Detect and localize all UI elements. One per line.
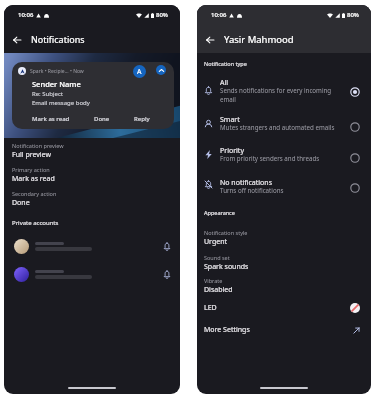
staticText: Private accounts [12, 219, 59, 227]
staticText: Turns off notifications [220, 186, 284, 194]
staticText: Re: Subject [32, 90, 63, 98]
button[interactable]: Notifications [4, 238, 180, 254]
button[interactable]: Collapse [156, 65, 166, 75]
staticText: Full preview [12, 150, 51, 160]
button[interactable]: Notifications [161, 268, 173, 280]
staticText: More Settings [204, 325, 250, 335]
staticText: Email message body [32, 99, 90, 107]
staticText: Priority [220, 146, 244, 156]
staticText: Notification type [204, 60, 247, 67]
staticText: Sender Name [32, 79, 81, 89]
button[interactable]: Priority [197, 146, 371, 164]
staticText: Spark sounds [204, 262, 249, 272]
button[interactable]: Notifications [161, 240, 173, 252]
staticText: LED [204, 303, 217, 313]
button[interactable]: Done [94, 115, 110, 123]
staticText: Notification preview [12, 142, 64, 149]
staticText: Mutes strangers and automated emails [220, 123, 335, 131]
button[interactable]: A [133, 65, 146, 78]
button[interactable]: Notification preview [4, 142, 180, 160]
staticText: Spark • Recipie... • Now [30, 68, 84, 75]
staticText: Urgent [204, 237, 228, 247]
staticText: Primary action [12, 166, 50, 173]
staticText: 80% [156, 11, 168, 19]
button[interactable]: All [197, 78, 371, 106]
staticText: 10:06 [18, 11, 34, 19]
staticText: Appearance [204, 209, 235, 216]
staticText: Mark as read [12, 174, 55, 184]
button[interactable]: Notification style [197, 229, 371, 247]
button[interactable]: No notifications [197, 178, 371, 196]
button[interactable]: Primary action [4, 166, 180, 184]
staticText: Done [12, 198, 30, 208]
staticText: 80% [347, 11, 359, 19]
staticText: 10:06 [211, 11, 227, 19]
staticText: Sound set [204, 254, 230, 261]
button[interactable]: More Settings [197, 321, 371, 339]
button[interactable]: Mark as read [32, 115, 70, 123]
button[interactable]: Back [203, 33, 217, 47]
button[interactable]: Sound set [197, 254, 371, 272]
button[interactable]: Reply [134, 115, 150, 123]
staticText: Disabled [204, 285, 233, 295]
staticText: Vibrate [204, 277, 223, 284]
button[interactable]: Notifications [4, 266, 180, 282]
staticText: A [137, 67, 142, 77]
staticText: All [220, 78, 229, 88]
button[interactable]: LED [197, 299, 371, 317]
staticText: Secondary action [12, 190, 57, 197]
staticText: Notifications [31, 33, 85, 45]
button[interactable]: Smart [197, 115, 371, 133]
staticText: No notifications [220, 178, 273, 188]
button[interactable]: Vibrate [197, 277, 371, 295]
staticText: Yasir Mahmood [224, 33, 294, 46]
staticText: From priority senders and threads [220, 154, 320, 162]
button[interactable]: Back [10, 33, 24, 47]
button[interactable]: Secondary action [4, 190, 180, 208]
staticText: Notification style [204, 229, 248, 236]
staticText: Sends notifications for every incoming e… [220, 86, 332, 104]
staticText: Smart [220, 115, 240, 125]
